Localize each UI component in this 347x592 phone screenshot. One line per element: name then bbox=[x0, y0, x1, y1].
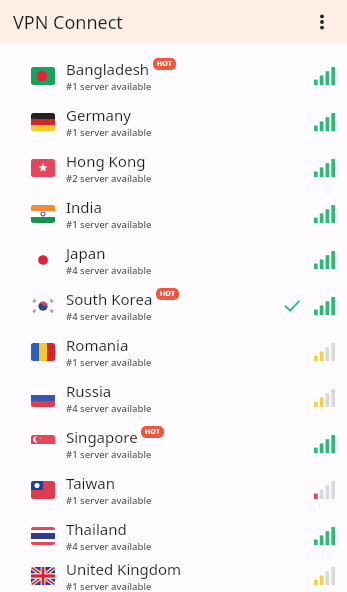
button[interactable]: Germany bbox=[0, 99, 347, 145]
staticText: Singapore bbox=[66, 427, 138, 447]
staticText: Thailand bbox=[66, 519, 127, 539]
button[interactable]: More options bbox=[305, 5, 339, 39]
staticText: India bbox=[66, 197, 102, 217]
staticText: #1 server available bbox=[66, 126, 152, 139]
staticText: #1 server available bbox=[66, 80, 152, 93]
staticText: #4 server available bbox=[66, 402, 152, 415]
staticText: Germany bbox=[66, 105, 131, 125]
staticText: #4 server available bbox=[66, 264, 152, 277]
button[interactable]: South Korea bbox=[0, 283, 347, 329]
button[interactable]: Taiwan bbox=[0, 467, 347, 513]
staticText: #1 server available bbox=[66, 448, 152, 461]
staticText: #1 server available bbox=[66, 494, 152, 507]
staticText: Taiwan bbox=[66, 473, 115, 493]
staticText: #2 server available bbox=[66, 172, 152, 185]
staticText: VPN Connect bbox=[13, 10, 123, 35]
button[interactable]: Romania bbox=[0, 329, 347, 375]
button[interactable]: Japan bbox=[0, 237, 347, 283]
button[interactable]: Singapore bbox=[0, 421, 347, 467]
staticText: Japan bbox=[66, 243, 106, 263]
staticText: HOT bbox=[157, 59, 172, 69]
button[interactable]: Bangladesh bbox=[0, 53, 347, 99]
staticText: #1 server available bbox=[66, 580, 152, 592]
button[interactable]: United Kingdom bbox=[0, 559, 347, 592]
staticText: Romania bbox=[66, 335, 129, 355]
staticText: #4 server available bbox=[66, 540, 152, 553]
button[interactable]: Hong Kong bbox=[0, 145, 347, 191]
staticText: Bangladesh bbox=[66, 59, 150, 79]
staticText: Hong Kong bbox=[66, 151, 146, 171]
staticText: #4 server available bbox=[66, 310, 152, 323]
staticText: South Korea bbox=[66, 289, 153, 309]
button[interactable]: Russia bbox=[0, 375, 347, 421]
staticText: HOT bbox=[145, 427, 160, 437]
staticText: United Kingdom bbox=[66, 559, 182, 579]
button[interactable]: India bbox=[0, 191, 347, 237]
staticText: #1 server available bbox=[66, 218, 152, 231]
staticText: #1 server available bbox=[66, 356, 152, 369]
button[interactable]: Thailand bbox=[0, 513, 347, 559]
staticText: Russia bbox=[66, 381, 112, 401]
staticText: HOT bbox=[160, 289, 175, 299]
